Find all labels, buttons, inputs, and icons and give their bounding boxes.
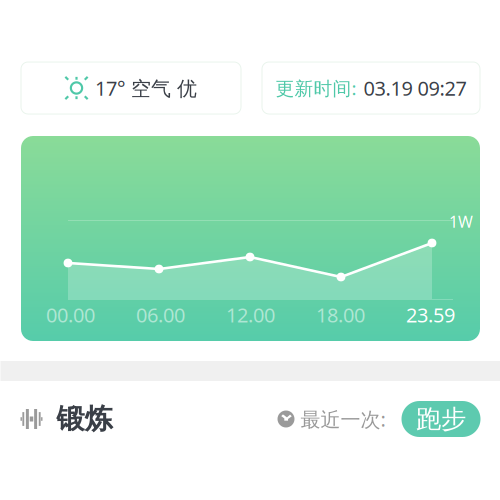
staticText: 17° 空气 优: [95, 75, 197, 101]
button[interactable]: 跑步: [401, 401, 480, 437]
staticText: 跑步: [416, 403, 466, 434]
staticText: 更新时间:: [275, 76, 356, 100]
staticText: 00.00: [46, 301, 95, 328]
button[interactable]: 更新时间:: [262, 62, 480, 114]
staticText: 最近一次:: [300, 406, 385, 432]
staticText: 06.00: [136, 301, 185, 328]
staticText: 1W: [449, 211, 473, 232]
staticText: 23.59: [406, 301, 455, 328]
staticText: 12.00: [226, 301, 275, 328]
button[interactable]: 最近一次:: [277, 406, 385, 432]
staticText: 03.19 09:27: [363, 75, 466, 101]
staticText: 18.00: [316, 301, 365, 328]
staticText: 锻炼: [56, 402, 112, 436]
button[interactable]: 17° 空气 优: [21, 62, 241, 114]
